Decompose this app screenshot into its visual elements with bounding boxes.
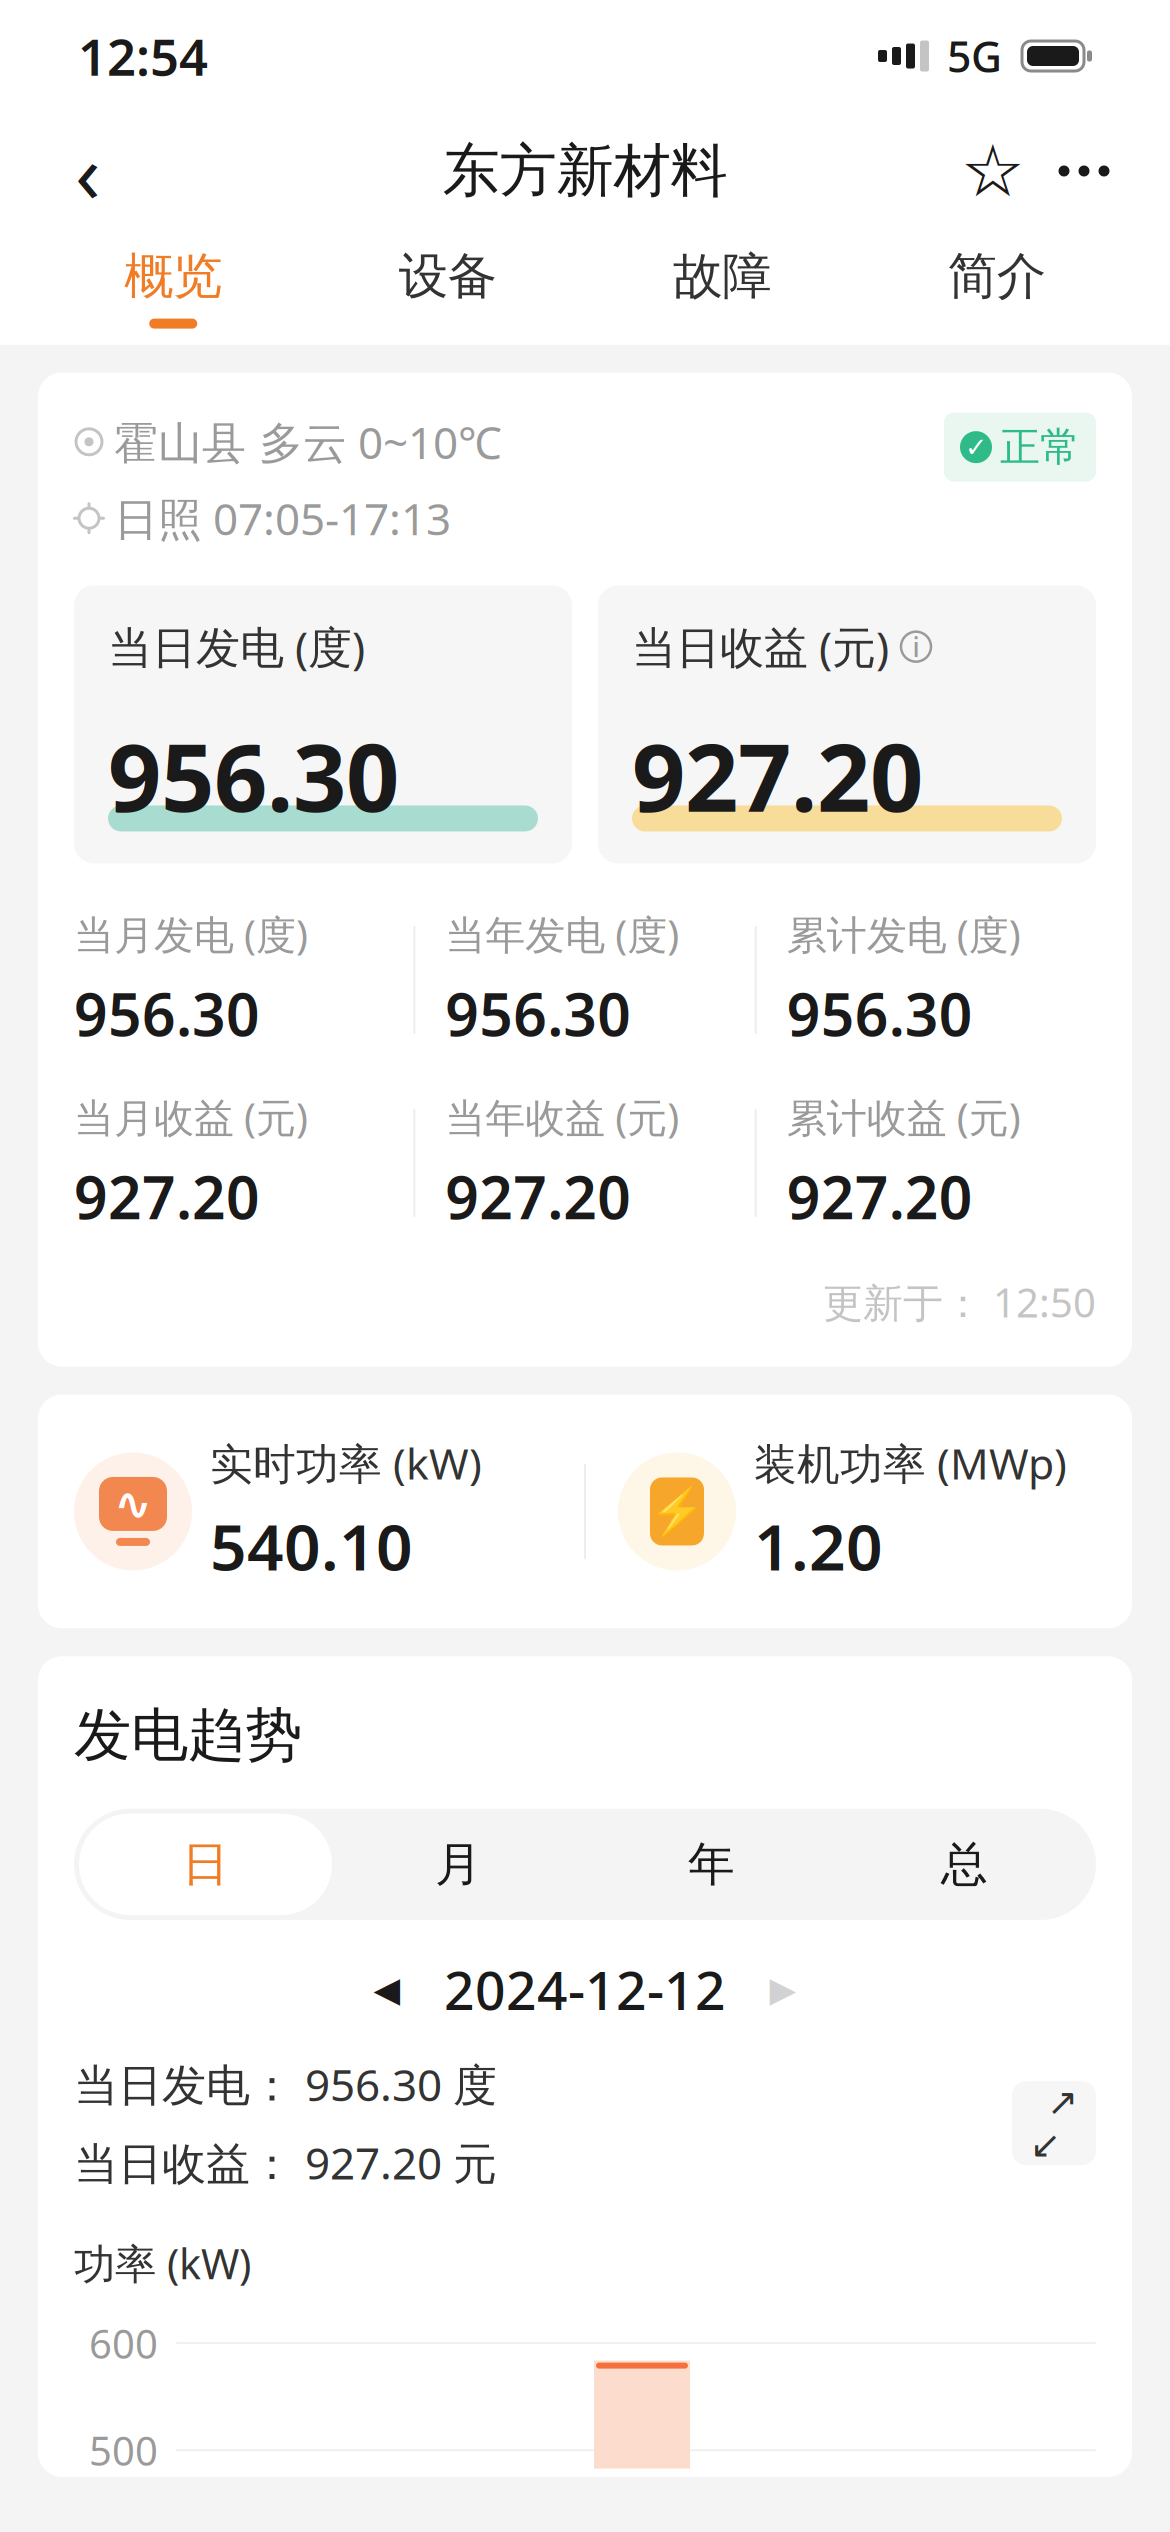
staticText: ↙ bbox=[1030, 2123, 1061, 2166]
staticText: 简介 bbox=[948, 246, 1046, 307]
button[interactable]: 总 bbox=[838, 1814, 1091, 1915]
staticText: ▶ bbox=[769, 1970, 796, 2009]
staticText: ∿ bbox=[114, 1478, 152, 1530]
button[interactable]: 月 bbox=[332, 1814, 585, 1915]
staticText: 5G bbox=[947, 28, 1002, 84]
staticText: i bbox=[912, 629, 919, 664]
staticText: 600 bbox=[89, 2317, 158, 2370]
staticText: 概览 bbox=[124, 246, 222, 307]
button[interactable]: 设备 bbox=[310, 230, 585, 345]
staticText: 日照 07:05-17:13 bbox=[114, 489, 451, 547]
staticText: ↗ bbox=[1047, 2081, 1078, 2123]
staticText: ★ bbox=[960, 130, 1025, 212]
staticText: 日 bbox=[182, 1836, 229, 1893]
staticText: 956.30 bbox=[787, 975, 973, 1052]
staticText: 累计发电 (度) bbox=[787, 907, 1021, 961]
button[interactable]: Favorite bbox=[948, 123, 1038, 219]
staticText: 当月收益 (元) bbox=[74, 1090, 308, 1144]
staticText: 正常 bbox=[1000, 423, 1080, 472]
staticText: 当年收益 (元) bbox=[445, 1090, 679, 1144]
staticText: 12:54 bbox=[78, 22, 208, 90]
button[interactable]: 日 bbox=[79, 1814, 332, 1915]
button[interactable]: Previous day bbox=[352, 1959, 422, 2019]
staticText: 927.20 bbox=[632, 713, 923, 837]
staticText: 故障 bbox=[673, 246, 771, 307]
staticText: 当日发电 (度) bbox=[108, 617, 365, 676]
staticText: 累计收益 (元) bbox=[787, 1090, 1021, 1144]
staticText: ◀ bbox=[373, 1970, 400, 2009]
staticText: 月 bbox=[435, 1836, 482, 1893]
staticText: 东方新材料 bbox=[442, 136, 727, 206]
staticText: 927.20 bbox=[74, 1158, 260, 1235]
staticText: ★ bbox=[969, 141, 1017, 201]
staticText: 956.30 bbox=[74, 975, 260, 1052]
staticText: 1.20 bbox=[754, 1503, 883, 1588]
button[interactable]: Back bbox=[40, 123, 136, 219]
button[interactable]: Next day bbox=[748, 1959, 818, 2019]
staticText: 更新于： 12:50 bbox=[823, 1275, 1096, 1329]
staticText: 实时功率 (kW) bbox=[210, 1435, 482, 1491]
staticText: 当日收益： 927.20 元 bbox=[74, 2133, 497, 2192]
staticText: 927.20 bbox=[787, 1158, 973, 1235]
staticText: 当日收益 (元) bbox=[632, 617, 889, 676]
staticText: 2024-12-12 bbox=[444, 1954, 726, 2025]
staticText: 设备 bbox=[399, 246, 497, 307]
staticText: 当年发电 (度) bbox=[445, 907, 679, 961]
staticText: 功率 (kW) bbox=[74, 2236, 251, 2291]
staticText: 年 bbox=[688, 1836, 735, 1893]
staticText: 927.20 bbox=[445, 1158, 631, 1235]
staticText: 500 bbox=[89, 2424, 158, 2477]
staticText: ✓ bbox=[965, 432, 987, 462]
staticText: 霍山县 多云 0~10℃ bbox=[114, 413, 502, 471]
staticText: 当月发电 (度) bbox=[74, 907, 308, 961]
button[interactable]: Expand chart bbox=[1012, 2081, 1096, 2165]
staticText: 956.30 bbox=[108, 713, 399, 837]
button[interactable]: 简介 bbox=[859, 230, 1134, 345]
staticText: 当日发电： 956.30 度 bbox=[74, 2055, 497, 2113]
staticText: 总 bbox=[941, 1836, 988, 1893]
staticText: 发电趋势 bbox=[74, 1700, 302, 1771]
button[interactable]: More options bbox=[1038, 123, 1130, 219]
staticText: ⚡ bbox=[649, 1485, 705, 1537]
button[interactable]: 年 bbox=[585, 1814, 838, 1915]
staticText: 956.30 bbox=[445, 975, 631, 1052]
staticText: 装机功率 (MWp) bbox=[754, 1435, 1067, 1491]
staticText: 540.10 bbox=[210, 1503, 413, 1588]
staticText: ‹ bbox=[75, 116, 101, 226]
button[interactable]: 故障 bbox=[585, 230, 859, 345]
button[interactable]: 概览 bbox=[36, 230, 310, 345]
